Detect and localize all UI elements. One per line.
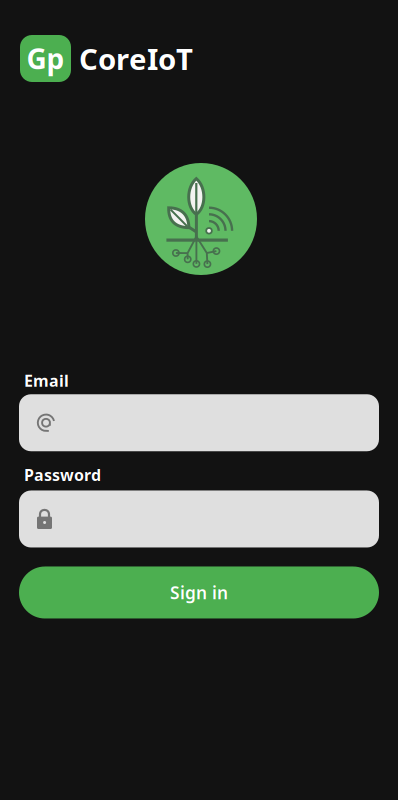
staticText: Password bbox=[24, 464, 101, 485]
staticText: CoreIoT bbox=[79, 39, 193, 78]
staticText: Gp bbox=[26, 40, 64, 77]
staticText: Sign in bbox=[170, 581, 228, 604]
staticText: Email bbox=[24, 370, 69, 391]
button[interactable]: Sign in bbox=[19, 566, 379, 618]
